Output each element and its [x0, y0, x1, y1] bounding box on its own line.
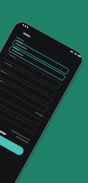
- other: Phone mockup: [0, 0, 88, 183]
